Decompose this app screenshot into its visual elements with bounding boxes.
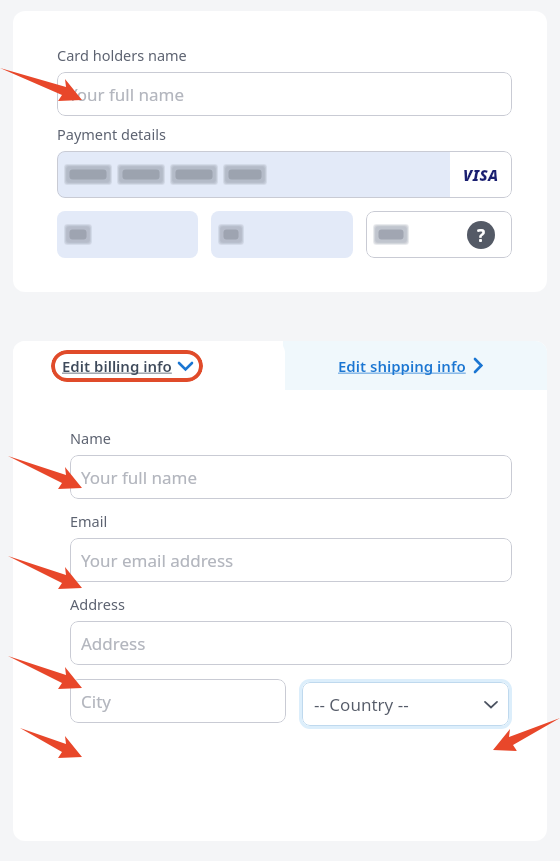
button[interactable]: Your full name bbox=[70, 455, 512, 499]
button[interactable]: Your full name bbox=[57, 72, 512, 116]
button[interactable] bbox=[366, 211, 450, 258]
staticText: Name bbox=[70, 428, 111, 448]
staticText: Email bbox=[70, 511, 108, 531]
button[interactable]: Your email address bbox=[70, 538, 512, 582]
button[interactable] bbox=[211, 211, 353, 258]
staticText: Your full name bbox=[68, 83, 185, 106]
staticText: Edit shipping info bbox=[338, 356, 466, 376]
staticText: ? bbox=[477, 224, 486, 247]
button[interactable] bbox=[57, 151, 450, 198]
staticText: Address bbox=[70, 594, 125, 614]
staticText: Your full name bbox=[81, 466, 198, 489]
button[interactable]: Edit billing info bbox=[62, 350, 192, 382]
button[interactable] bbox=[57, 211, 198, 258]
staticText: Your email address bbox=[81, 549, 234, 572]
staticText: VISA bbox=[463, 165, 499, 185]
staticText: City bbox=[81, 690, 111, 713]
button[interactable]: City bbox=[70, 679, 286, 723]
button[interactable]: Edit shipping info bbox=[338, 341, 482, 390]
button[interactable]: -- Country -- bbox=[302, 682, 509, 726]
staticText: Address bbox=[81, 632, 146, 655]
staticText: Payment details bbox=[57, 124, 166, 144]
button[interactable]: Address bbox=[70, 621, 512, 665]
staticText: Edit billing info bbox=[62, 356, 172, 376]
button[interactable]: What is CVC? bbox=[450, 211, 512, 258]
staticText: -- Country -- bbox=[314, 693, 409, 716]
staticText: Card holders name bbox=[57, 45, 187, 65]
